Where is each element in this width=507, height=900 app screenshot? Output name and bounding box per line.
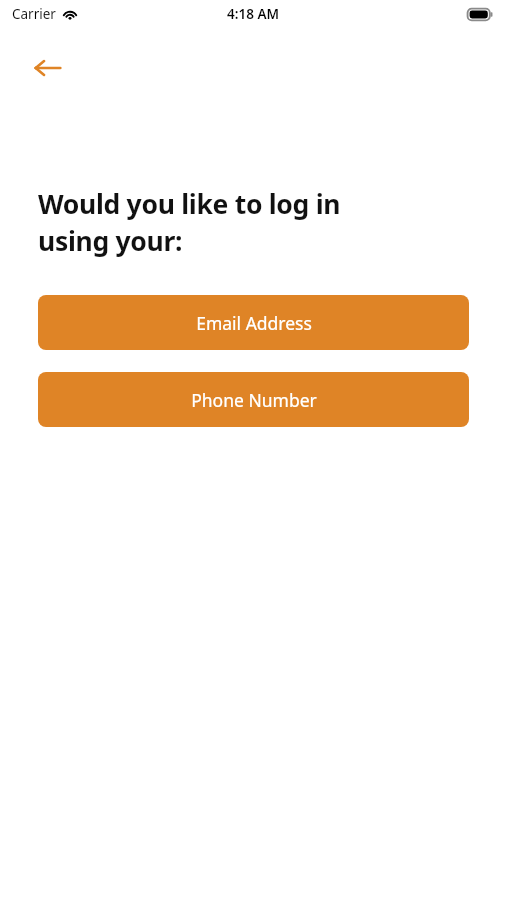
staticText: Phone Number (191, 388, 317, 412)
button[interactable]: Phone Number (38, 372, 469, 427)
staticText: Email Address (196, 311, 312, 335)
staticText: Would you like to log in using your: (38, 186, 487, 259)
staticText: 4:18 AM (227, 5, 280, 23)
staticText: Carrier (12, 5, 56, 23)
button[interactable]: Back (26, 46, 70, 90)
button[interactable]: Email Address (38, 295, 469, 350)
